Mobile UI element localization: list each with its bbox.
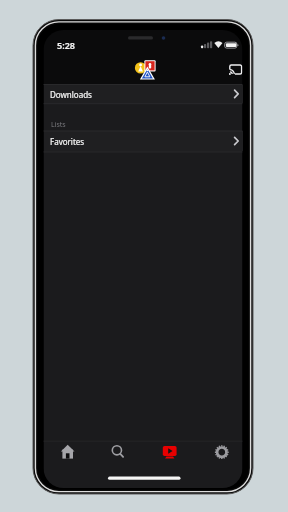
button[interactable] [192,441,241,465]
button[interactable] [45,441,94,465]
button[interactable]: Downloads [44,85,243,103]
staticText: Lists [51,120,66,130]
button[interactable] [227,61,245,77]
button[interactable] [143,441,192,465]
staticText: Favorites [50,136,85,147]
staticText: 5:28 [57,39,75,51]
button[interactable]: Favorites [44,131,243,151]
button[interactable] [94,441,143,465]
staticText: Downloads [50,89,92,100]
